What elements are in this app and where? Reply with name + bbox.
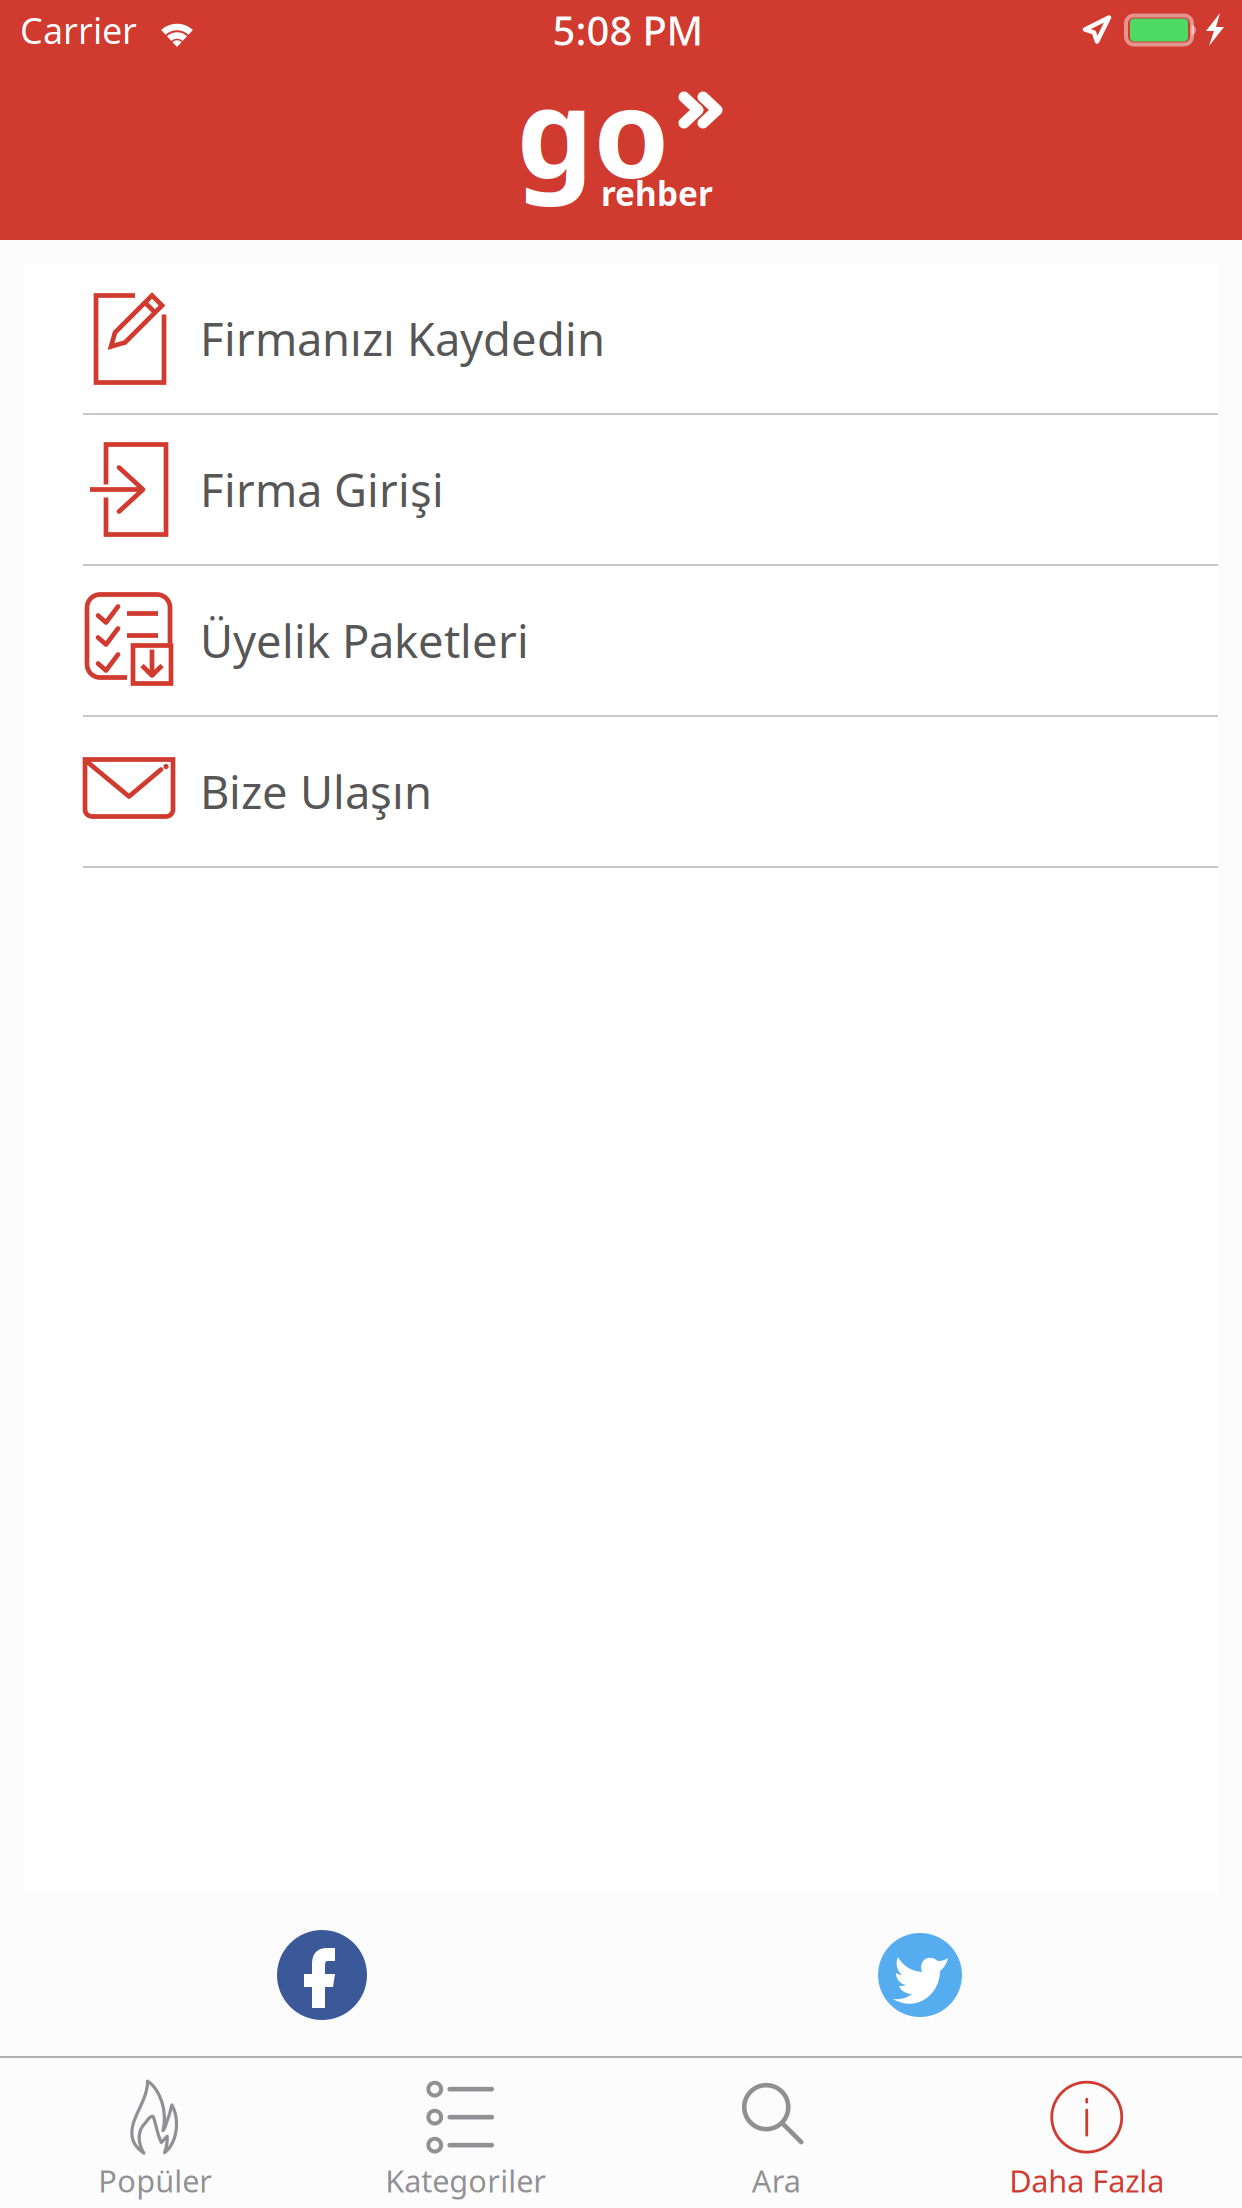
staticText: Daha Fazla (1009, 2160, 1164, 2201)
staticText: Üyelik Paketleri (200, 610, 529, 671)
button[interactable]: Twitter (878, 1933, 962, 2017)
staticText: Firma Girişi (200, 459, 444, 520)
staticText: Popüler (98, 2160, 212, 2201)
staticText: Ara (752, 2160, 801, 2201)
staticText: Kategoriler (385, 2160, 546, 2201)
button[interactable]: Popüler (0, 2058, 310, 2208)
button[interactable]: Firma Girişi (24, 415, 1218, 564)
button[interactable]: Kategoriler (310, 2058, 621, 2208)
staticText: Bize Ulaşın (200, 761, 432, 822)
staticText: Firmanızı Kaydedin (200, 308, 605, 369)
button[interactable]: Ara (621, 2058, 931, 2208)
button[interactable]: Facebook (277, 1930, 367, 2020)
button[interactable]: Firmanızı Kaydedin (24, 264, 1218, 413)
staticText: rehber (601, 171, 713, 215)
button[interactable]: Daha Fazla (931, 2058, 1242, 2208)
staticText: Carrier (20, 6, 137, 54)
button[interactable]: Üyelik Paketleri (24, 566, 1218, 715)
staticText: go (516, 50, 669, 211)
staticText: 5:08 PM (552, 3, 703, 56)
button[interactable]: Bize Ulaşın (24, 717, 1218, 866)
